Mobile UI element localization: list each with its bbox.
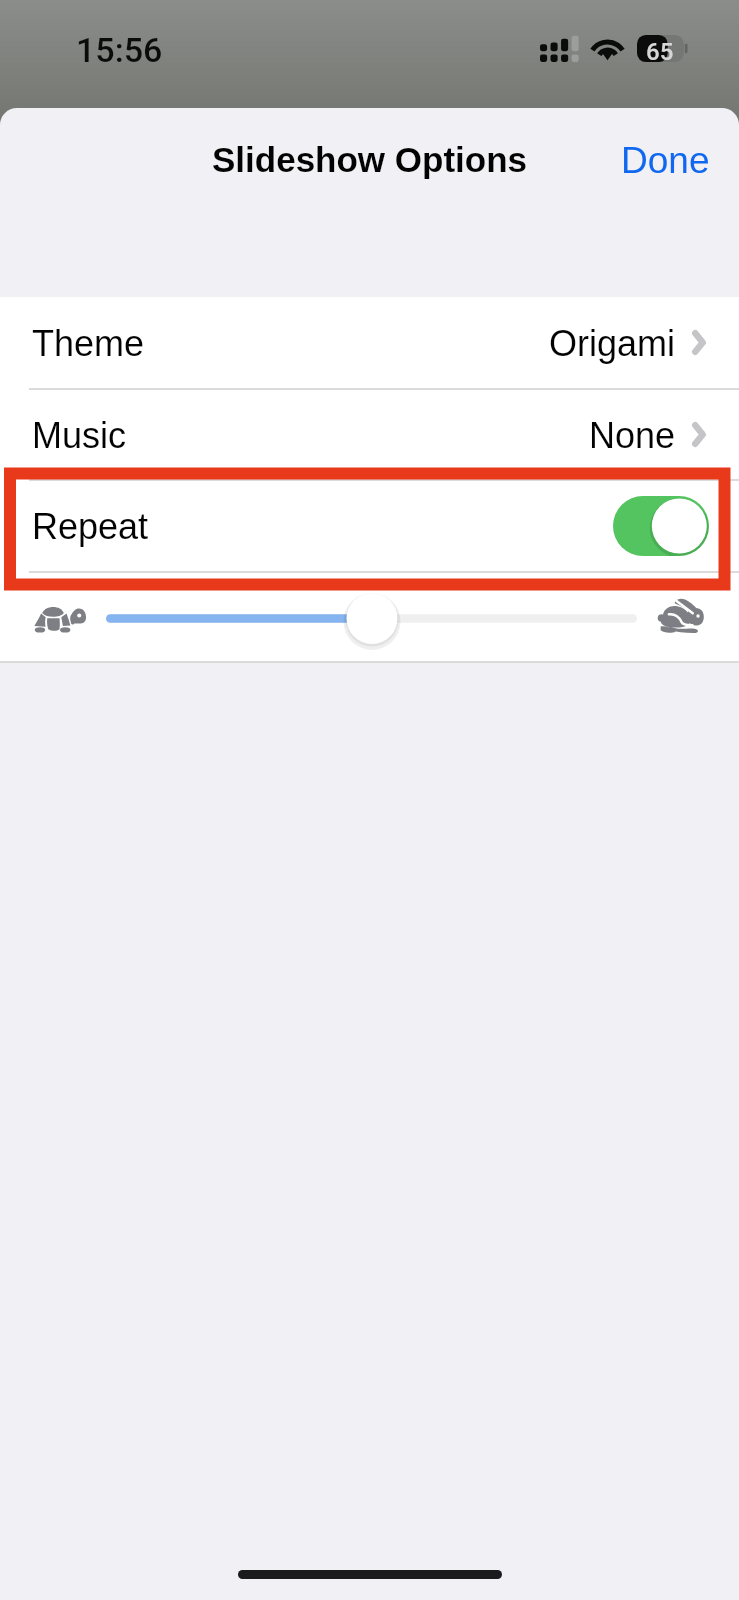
staticText: None [589, 415, 676, 455]
staticText: Slideshow Options [0, 140, 739, 179]
staticText: 15:56 [76, 30, 163, 70]
button[interactable]: Theme [0, 297, 739, 388]
button[interactable]: Repeat [0, 481, 739, 571]
button[interactable]: Done [592, 122, 739, 199]
other: Slow [34, 606, 86, 633]
button[interactable]: Speed [0, 573, 739, 661]
button[interactable]: Repeat, on [613, 496, 709, 556]
staticText: 65 [646, 38, 674, 65]
staticText: Done [621, 140, 710, 181]
staticText: Origami [549, 323, 676, 363]
staticText: Music [32, 415, 127, 455]
staticText: Repeat [32, 506, 149, 546]
button[interactable]: Music [0, 390, 739, 479]
other: Fast [657, 599, 705, 633]
staticText: Theme [32, 323, 145, 363]
